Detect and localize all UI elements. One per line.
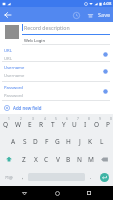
button[interactable]: Copy URL (97, 47, 113, 61)
button[interactable]: X (30, 150, 41, 168)
button[interactable]: Back (0, 7, 15, 22)
staticText: J (79, 137, 81, 146)
staticText: S (23, 137, 27, 146)
button[interactable]: Recents (83, 187, 95, 199)
button[interactable]: K (85, 132, 96, 150)
button[interactable]: D (30, 132, 41, 150)
staticText: A (11, 137, 16, 146)
staticText: M (88, 155, 94, 164)
button[interactable]: ?1@ (0, 168, 17, 186)
staticText: V (56, 155, 60, 164)
button[interactable]: F (41, 132, 52, 150)
staticText: R (39, 120, 44, 129)
button[interactable]: C (41, 150, 52, 168)
button[interactable]: N (74, 150, 85, 168)
button[interactable]: 2 (12, 114, 24, 132)
staticText: C (44, 155, 49, 164)
staticText: L (100, 137, 104, 146)
button[interactable]: 6 (58, 114, 69, 132)
button[interactable]: Period (85, 168, 96, 186)
staticText: F (45, 137, 49, 146)
button[interactable]: M (85, 150, 96, 168)
button[interactable]: Comma (17, 168, 28, 186)
staticText: URL (4, 56, 12, 62)
button[interactable]: B (63, 150, 74, 168)
staticText: U (72, 120, 77, 129)
staticText: 7 (77, 117, 79, 121)
staticText: E (28, 120, 32, 129)
staticText: URL (4, 48, 12, 54)
staticText: Web Login (24, 38, 46, 44)
staticText: , (22, 174, 24, 181)
button[interactable]: V (52, 150, 63, 168)
staticText: Username (4, 73, 25, 79)
button[interactable]: 3 (24, 114, 36, 132)
staticText: Password (4, 93, 23, 99)
staticText: . (90, 174, 92, 181)
button[interactable]: Save (98, 7, 111, 22)
button[interactable]: S (19, 132, 30, 150)
staticText: 3 (32, 117, 34, 121)
button[interactable]: 7 (69, 114, 80, 132)
staticText: D (33, 137, 38, 146)
button[interactable]: H (63, 132, 74, 150)
staticText: ?1@ (5, 175, 13, 180)
staticText: Save (98, 11, 111, 18)
staticText: Y (62, 120, 66, 129)
button[interactable]: 1 (0, 114, 12, 132)
staticText: 4 (44, 117, 46, 121)
button[interactable]: 5 (47, 114, 58, 132)
button[interactable]: Delete (83, 8, 97, 22)
staticText: 4:08 (103, 1, 112, 7)
staticText: O (94, 120, 100, 129)
staticText: Q (3, 120, 9, 129)
staticText: T (51, 120, 55, 129)
button[interactable]: Z (18, 150, 30, 168)
button[interactable]: 0 (102, 114, 113, 132)
staticText: G (55, 137, 60, 146)
staticText: Password (4, 85, 23, 91)
button[interactable]: Shift (0, 150, 18, 168)
button[interactable]: G (52, 132, 63, 150)
staticText: 6 (66, 117, 68, 121)
staticText: H (66, 137, 71, 146)
staticText: B (66, 155, 71, 164)
button[interactable]: Back (18, 187, 30, 199)
button[interactable]: 4 (36, 114, 47, 132)
button[interactable]: 9 (91, 114, 102, 132)
button[interactable]: A (7, 132, 19, 150)
button[interactable]: Home (51, 187, 63, 199)
staticText: N (77, 155, 82, 164)
staticText: 2 (20, 117, 22, 121)
button[interactable]: Enter (100, 173, 109, 182)
staticText: 8 (88, 117, 90, 121)
staticText: X (34, 155, 38, 164)
staticText: Username (4, 65, 25, 71)
staticText: 1 (8, 117, 10, 121)
staticText: Record description (24, 24, 70, 31)
button[interactable]: Copy Password (97, 84, 113, 98)
staticText: Add new field (13, 105, 42, 111)
button[interactable]: L (96, 132, 107, 150)
staticText: I (84, 120, 87, 129)
staticText: Z (22, 155, 26, 164)
staticText: W (15, 120, 22, 129)
staticText: P (106, 120, 110, 129)
button[interactable]: Copy Username (97, 64, 113, 78)
button[interactable]: 8 (80, 114, 91, 132)
button[interactable]: Lock (69, 8, 83, 22)
button[interactable]: Add new field (0, 101, 113, 114)
button[interactable]: Backspace (96, 150, 113, 168)
staticText: K (88, 137, 93, 146)
button[interactable]: J (74, 132, 85, 150)
staticText: 0 (110, 117, 112, 121)
staticText: 5 (55, 117, 57, 121)
staticText: 9 (99, 117, 101, 121)
